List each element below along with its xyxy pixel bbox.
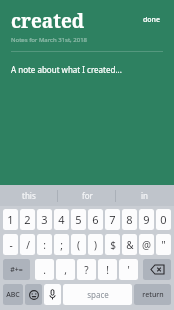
staticText: A note about what I created...	[11, 64, 122, 75]
button[interactable]: 6	[88, 209, 103, 230]
staticText: 1	[7, 212, 14, 227]
button[interactable]: return	[134, 284, 171, 305]
staticText: 4	[58, 212, 65, 227]
button[interactable]: 8	[122, 209, 137, 230]
button[interactable]: $	[105, 234, 120, 255]
button[interactable]: &	[122, 234, 137, 255]
button[interactable]: !	[98, 259, 117, 280]
staticText: #+=	[10, 265, 23, 275]
button[interactable]: 1	[3, 209, 18, 230]
staticText: .	[43, 263, 46, 277]
staticText: space	[87, 289, 109, 300]
button[interactable]: '	[119, 259, 138, 280]
staticText: )	[94, 238, 97, 252]
button[interactable]: /	[20, 234, 35, 255]
button[interactable]: ?	[77, 259, 96, 280]
staticText: this	[22, 190, 36, 201]
button[interactable]: 0	[156, 209, 171, 230]
staticText: 9	[143, 212, 150, 227]
button[interactable]: Emoji	[25, 284, 42, 305]
staticText: ?	[84, 263, 89, 277]
staticText: @	[142, 238, 151, 252]
staticText: !	[106, 263, 109, 277]
button[interactable]: done	[140, 13, 164, 27]
staticText: 3	[41, 212, 48, 227]
button[interactable]: ABC	[3, 284, 23, 305]
staticText: 5	[75, 212, 82, 227]
staticText: 8	[126, 212, 133, 227]
button[interactable]: )	[88, 234, 103, 255]
button[interactable]: 2	[20, 209, 35, 230]
staticText: 7	[109, 212, 116, 227]
button[interactable]: @	[139, 234, 154, 255]
button[interactable]: for	[58, 185, 116, 206]
staticText: for	[82, 190, 93, 201]
staticText: created	[11, 8, 85, 34]
staticText: done	[143, 15, 161, 25]
button[interactable]: (	[71, 234, 86, 255]
staticText: "	[161, 238, 166, 252]
button[interactable]: ;	[54, 234, 69, 255]
staticText: Notes for March 31st, 2018	[11, 36, 88, 44]
button[interactable]: ,	[56, 259, 75, 280]
staticText: ,	[64, 263, 67, 277]
staticText: return	[142, 290, 164, 300]
staticText: 2	[24, 212, 31, 227]
staticText: -	[9, 238, 13, 252]
button[interactable]: in	[116, 185, 174, 206]
staticText: in	[141, 190, 149, 201]
button[interactable]: 4	[54, 209, 69, 230]
staticText: 0	[160, 212, 167, 227]
button[interactable]: Voice input	[44, 284, 61, 305]
staticText: /	[26, 238, 30, 252]
button[interactable]: :	[37, 234, 52, 255]
staticText: $	[110, 238, 116, 252]
staticText: :	[43, 238, 46, 252]
button[interactable]: 7	[105, 209, 120, 230]
staticText: '	[127, 263, 130, 277]
button[interactable]: #+=	[3, 259, 30, 280]
staticText: &	[126, 238, 134, 252]
button[interactable]: 5	[71, 209, 86, 230]
staticText: (	[77, 238, 80, 252]
button[interactable]: .	[35, 259, 54, 280]
button[interactable]: 3	[37, 209, 52, 230]
staticText: ABC	[6, 290, 20, 300]
button[interactable]: Backspace	[143, 259, 171, 280]
button[interactable]: "	[156, 234, 171, 255]
button[interactable]: this	[0, 185, 58, 206]
button[interactable]: -	[3, 234, 18, 255]
staticText: 6	[92, 212, 99, 227]
button[interactable]: space	[63, 284, 132, 305]
staticText: ;	[60, 238, 63, 252]
button[interactable]: 9	[139, 209, 154, 230]
